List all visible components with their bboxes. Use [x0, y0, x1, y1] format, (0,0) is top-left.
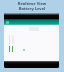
staticText: Realtime View [0, 1, 64, 6]
button[interactable]: Menu [4, 19, 59, 25]
staticText: Battery Level [0, 6, 64, 11]
